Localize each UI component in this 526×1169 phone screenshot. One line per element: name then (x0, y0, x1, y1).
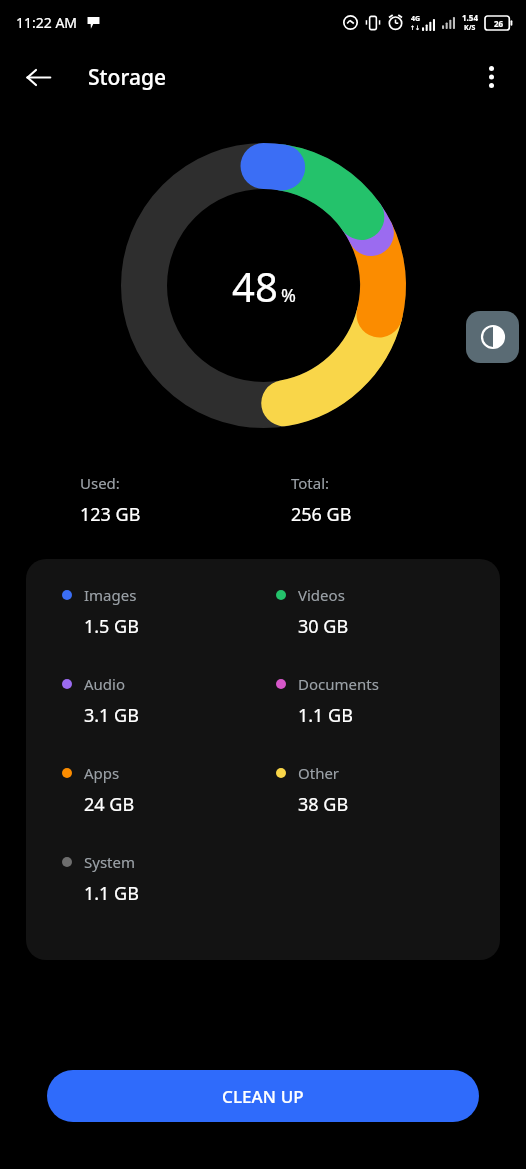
button[interactable]: System (62, 852, 143, 906)
button[interactable]: Documents (276, 674, 383, 728)
staticText: Images (84, 585, 137, 605)
staticText: 3.1 GB (84, 703, 139, 728)
staticText: Used: (80, 473, 120, 493)
staticText: Documents (298, 674, 379, 694)
staticText: 4G (411, 14, 421, 24)
staticText: Storage (88, 63, 166, 92)
staticText: K/S (464, 23, 476, 33)
staticText: Apps (84, 763, 120, 783)
button[interactable]: Apps (62, 763, 139, 817)
staticText: 11:22 AM (16, 13, 78, 32)
staticText: 1.5 GB (84, 614, 139, 639)
button[interactable]: More options (466, 52, 516, 102)
staticText: 24 GB (84, 792, 135, 817)
staticText: 1.1 GB (298, 703, 353, 728)
button[interactable]: Audio (62, 674, 143, 728)
staticText: % (281, 283, 296, 308)
button[interactable]: Other (276, 763, 353, 817)
button[interactable]: Videos (276, 585, 353, 639)
button[interactable]: CLEAN UP (47, 1070, 479, 1122)
staticText: 256 GB (291, 502, 352, 527)
staticText: 48 (232, 259, 278, 313)
staticText: System (84, 852, 135, 872)
staticText: 26 (494, 18, 504, 29)
staticText: 30 GB (298, 614, 349, 639)
button[interactable]: Back (12, 51, 64, 103)
button[interactable]: Contrast (466, 311, 519, 363)
staticText: CLEAN UP (222, 1085, 304, 1108)
button[interactable]: Images (62, 585, 143, 639)
staticText: Other (298, 763, 340, 783)
staticText: 38 GB (298, 792, 349, 817)
staticText: Audio (84, 674, 126, 694)
staticText: ↑↓ (410, 24, 421, 31)
staticText: Videos (298, 585, 345, 605)
staticText: 1.1 GB (84, 881, 139, 906)
staticText: 1.54 (462, 12, 478, 23)
staticText: 123 GB (80, 502, 141, 527)
staticText: Total: (291, 473, 330, 493)
